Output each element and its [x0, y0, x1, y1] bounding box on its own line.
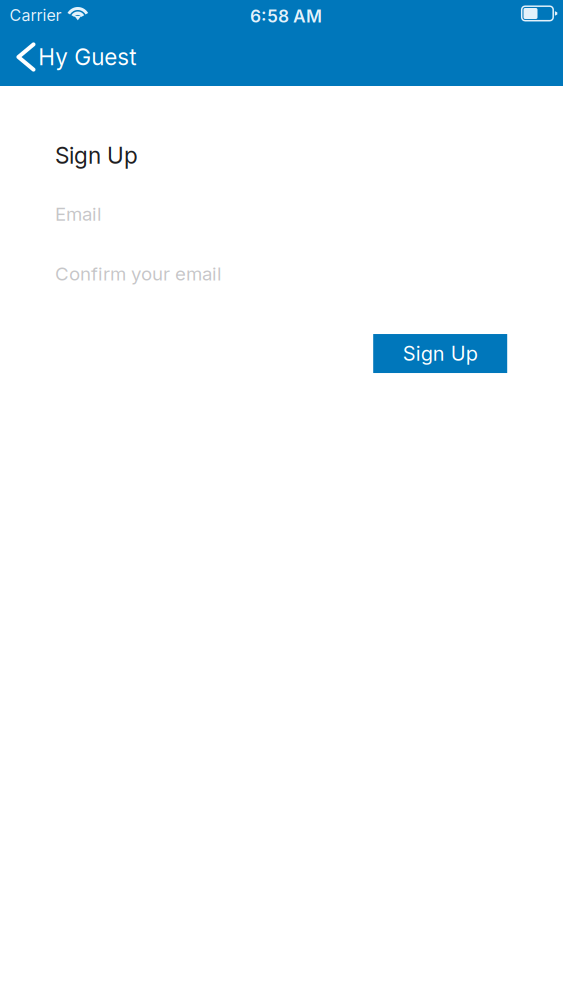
button[interactable]: Confirm your email: [55, 258, 507, 289]
button[interactable]: Sign Up: [373, 334, 507, 373]
staticText: Confirm your email: [55, 262, 222, 285]
button[interactable]: Email: [55, 198, 507, 229]
staticText: Sign Up: [403, 341, 478, 366]
button[interactable]: Back to Hy Guest: [0, 35, 148, 79]
staticText: Email: [55, 203, 102, 225]
staticText: 6:58 AM: [250, 6, 322, 27]
staticText: Sign Up: [55, 142, 138, 169]
staticText: Carrier: [9, 5, 61, 25]
staticText: Hy Guest: [38, 43, 136, 71]
